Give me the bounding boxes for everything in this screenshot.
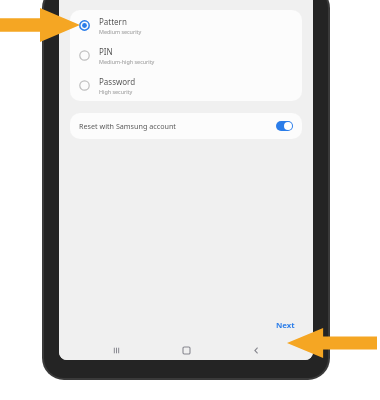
staticText: Next (276, 320, 295, 331)
button[interactable]: Home (173, 340, 199, 360)
button[interactable]: Next (272, 317, 299, 334)
staticText: Reset with Samsung account (79, 121, 176, 131)
staticText: Medium security (99, 28, 142, 35)
button[interactable]: Back (243, 340, 269, 360)
button[interactable]: Reset with Samsung account (70, 113, 302, 139)
button[interactable]: Pattern (70, 10, 302, 40)
button[interactable]: Recents (103, 340, 129, 360)
staticText: Medium-high security (99, 58, 155, 65)
staticText: Pattern (99, 16, 127, 27)
button[interactable]: Reset with Samsung account toggle (276, 121, 293, 131)
button[interactable]: PIN (70, 40, 302, 70)
button[interactable]: Password (70, 70, 302, 100)
staticText: High security (99, 88, 133, 95)
staticText: PIN (99, 46, 113, 57)
staticText: Password (99, 76, 136, 87)
